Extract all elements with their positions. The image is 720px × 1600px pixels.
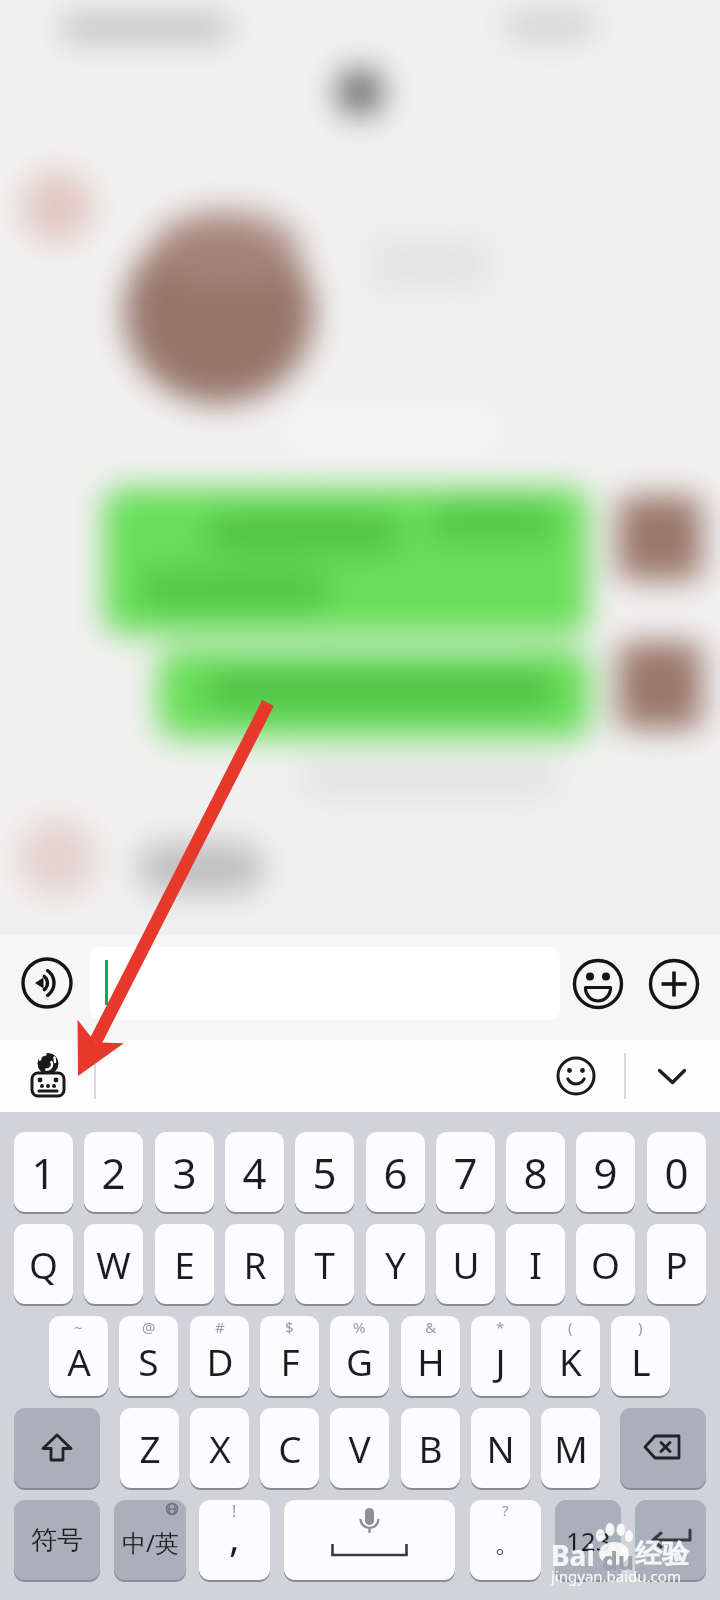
staticText: D: [206, 1336, 234, 1386]
button[interactable]: 9: [576, 1132, 635, 1212]
button[interactable]: N: [471, 1408, 530, 1488]
button[interactable]: 6: [366, 1132, 425, 1212]
staticText: P: [665, 1239, 688, 1289]
button[interactable]: U: [436, 1224, 495, 1304]
staticText: 4: [242, 1144, 267, 1201]
button[interactable]: [22, 958, 72, 1008]
button[interactable]: [14, 1408, 100, 1488]
staticText: ,: [229, 1509, 240, 1563]
button[interactable]: [28, 1048, 68, 1104]
staticText: Y: [385, 1239, 406, 1289]
staticText: O: [591, 1239, 620, 1289]
staticText: 2: [101, 1144, 126, 1201]
button[interactable]: W: [84, 1224, 143, 1304]
button[interactable]: 3: [155, 1132, 214, 1212]
staticText: 符号: [31, 1524, 83, 1557]
button[interactable]: &: [401, 1316, 460, 1396]
staticText: W: [96, 1239, 131, 1289]
staticText: R: [243, 1239, 267, 1289]
staticText: 123: [566, 1523, 611, 1558]
staticText: du: [602, 1543, 635, 1577]
staticText: Z: [139, 1423, 161, 1473]
button[interactable]: E: [155, 1224, 214, 1304]
button[interactable]: V: [330, 1408, 389, 1488]
button[interactable]: P: [647, 1224, 706, 1304]
button[interactable]: 4: [225, 1132, 284, 1212]
button[interactable]: 123: [555, 1500, 621, 1580]
staticText: U: [452, 1239, 480, 1289]
staticText: 0: [664, 1144, 689, 1201]
staticText: S: [138, 1336, 159, 1386]
staticText: ): [638, 1317, 643, 1337]
button[interactable]: 7: [436, 1132, 495, 1212]
staticText: (: [568, 1317, 573, 1337]
button[interactable]: Z: [120, 1408, 179, 1488]
staticText: 中/英: [122, 1526, 179, 1559]
staticText: *: [496, 1317, 505, 1337]
staticText: Q: [29, 1239, 58, 1289]
button[interactable]: *: [471, 1316, 530, 1396]
staticText: L: [631, 1336, 651, 1386]
button[interactable]: @: [119, 1316, 178, 1396]
staticText: 3: [172, 1144, 197, 1201]
staticText: E: [174, 1239, 195, 1289]
button[interactable]: %: [330, 1316, 389, 1396]
staticText: jingyan.baidu.com: [551, 1566, 681, 1586]
button[interactable]: [573, 959, 623, 1009]
staticText: I: [529, 1239, 542, 1289]
button[interactable]: 5: [295, 1132, 354, 1212]
staticText: #: [215, 1317, 225, 1337]
staticText: 7: [453, 1144, 478, 1201]
button[interactable]: 1: [14, 1132, 73, 1212]
button[interactable]: M: [541, 1408, 600, 1488]
staticText: 8: [523, 1144, 548, 1201]
button[interactable]: 2: [84, 1132, 143, 1212]
staticText: 1: [31, 1144, 56, 1201]
staticText: N: [486, 1423, 515, 1473]
button[interactable]: 8: [506, 1132, 565, 1212]
staticText: %: [353, 1317, 366, 1337]
button[interactable]: B: [401, 1408, 460, 1488]
button[interactable]: 中/英: [114, 1500, 186, 1580]
button[interactable]: $: [260, 1316, 319, 1396]
button[interactable]: [649, 959, 699, 1009]
button[interactable]: C: [260, 1408, 319, 1488]
staticText: ?: [502, 1500, 509, 1520]
button[interactable]: T: [295, 1224, 354, 1304]
button[interactable]: O: [576, 1224, 635, 1304]
button[interactable]: 符号: [14, 1500, 100, 1580]
button[interactable]: [90, 947, 560, 1020]
staticText: J: [495, 1336, 506, 1386]
button[interactable]: R: [225, 1224, 284, 1304]
staticText: 6: [383, 1144, 408, 1201]
staticText: T: [314, 1239, 335, 1289]
button[interactable]: (: [541, 1316, 600, 1396]
staticText: 经验: [635, 1537, 689, 1571]
button[interactable]: I: [506, 1224, 565, 1304]
staticText: Bai: [551, 1536, 595, 1574]
button[interactable]: #: [190, 1316, 249, 1396]
button[interactable]: Q: [14, 1224, 73, 1304]
button[interactable]: X: [190, 1408, 249, 1488]
staticText: 5: [312, 1144, 337, 1201]
button[interactable]: ?: [470, 1500, 541, 1580]
button[interactable]: [284, 1500, 455, 1580]
button[interactable]: [556, 1053, 596, 1099]
button[interactable]: Y: [366, 1224, 425, 1304]
staticText: 9: [593, 1144, 618, 1201]
staticText: F: [280, 1336, 300, 1386]
button[interactable]: 0: [647, 1132, 706, 1212]
staticText: A: [67, 1336, 91, 1386]
button[interactable]: [635, 1500, 706, 1580]
staticText: G: [346, 1336, 373, 1386]
button[interactable]: !: [199, 1500, 270, 1580]
button[interactable]: [620, 1408, 706, 1488]
staticText: X: [209, 1423, 231, 1473]
staticText: ~: [74, 1317, 83, 1337]
staticText: B: [418, 1423, 443, 1473]
button[interactable]: ): [611, 1316, 670, 1396]
button[interactable]: [646, 1058, 698, 1094]
staticText: C: [278, 1423, 302, 1473]
staticText: M: [554, 1423, 588, 1473]
button[interactable]: ~: [49, 1316, 108, 1396]
